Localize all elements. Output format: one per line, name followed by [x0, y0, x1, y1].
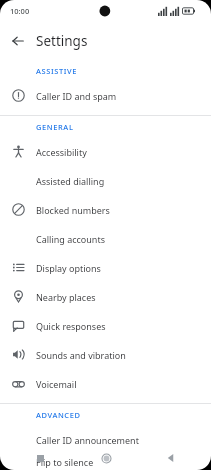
- staticText: Blocked numbers: [36, 204, 110, 216]
- button[interactable]: Nearby places: [0, 282, 211, 311]
- button[interactable]: Assisted dialling: [0, 166, 211, 195]
- button[interactable]: Home: [81, 446, 131, 470]
- button[interactable]: Back: [146, 446, 196, 470]
- staticText: Voicemail: [36, 378, 77, 390]
- staticText: Settings: [36, 32, 88, 50]
- button[interactable]: Caller ID and spam: [0, 81, 211, 110]
- staticText: Sounds and vibration: [36, 349, 126, 361]
- button[interactable]: Calling accounts: [0, 224, 211, 253]
- staticText: Assisted dialling: [36, 175, 105, 187]
- button[interactable]: Flip to silence: [0, 454, 211, 470]
- staticText: 10:00: [10, 6, 30, 16]
- button[interactable]: Display options: [0, 253, 211, 282]
- staticText: Caller ID announcement: [36, 434, 139, 446]
- staticText: Quick responses: [36, 320, 106, 332]
- button[interactable]: Quick responses: [0, 311, 211, 340]
- button[interactable]: Accessibility: [0, 137, 211, 166]
- staticText: Accessibility: [36, 146, 87, 158]
- staticText: Calling accounts: [36, 233, 105, 245]
- staticText: GENERAL: [36, 122, 74, 132]
- button[interactable]: Blocked numbers: [0, 195, 211, 224]
- staticText: ASSISTIVE: [36, 66, 78, 76]
- staticText: Display options: [36, 262, 101, 274]
- button[interactable]: Sounds and vibration: [0, 340, 211, 369]
- staticText: ADVANCED: [36, 410, 81, 420]
- staticText: Nearby places: [36, 291, 96, 303]
- button[interactable]: Recent apps: [15, 446, 65, 470]
- button[interactable]: Back: [0, 22, 36, 60]
- staticText: Flip to silence: [36, 456, 94, 468]
- button[interactable]: Voicemail: [0, 369, 211, 398]
- button[interactable]: Caller ID announcement: [0, 425, 211, 454]
- staticText: Caller ID and spam: [36, 90, 117, 102]
